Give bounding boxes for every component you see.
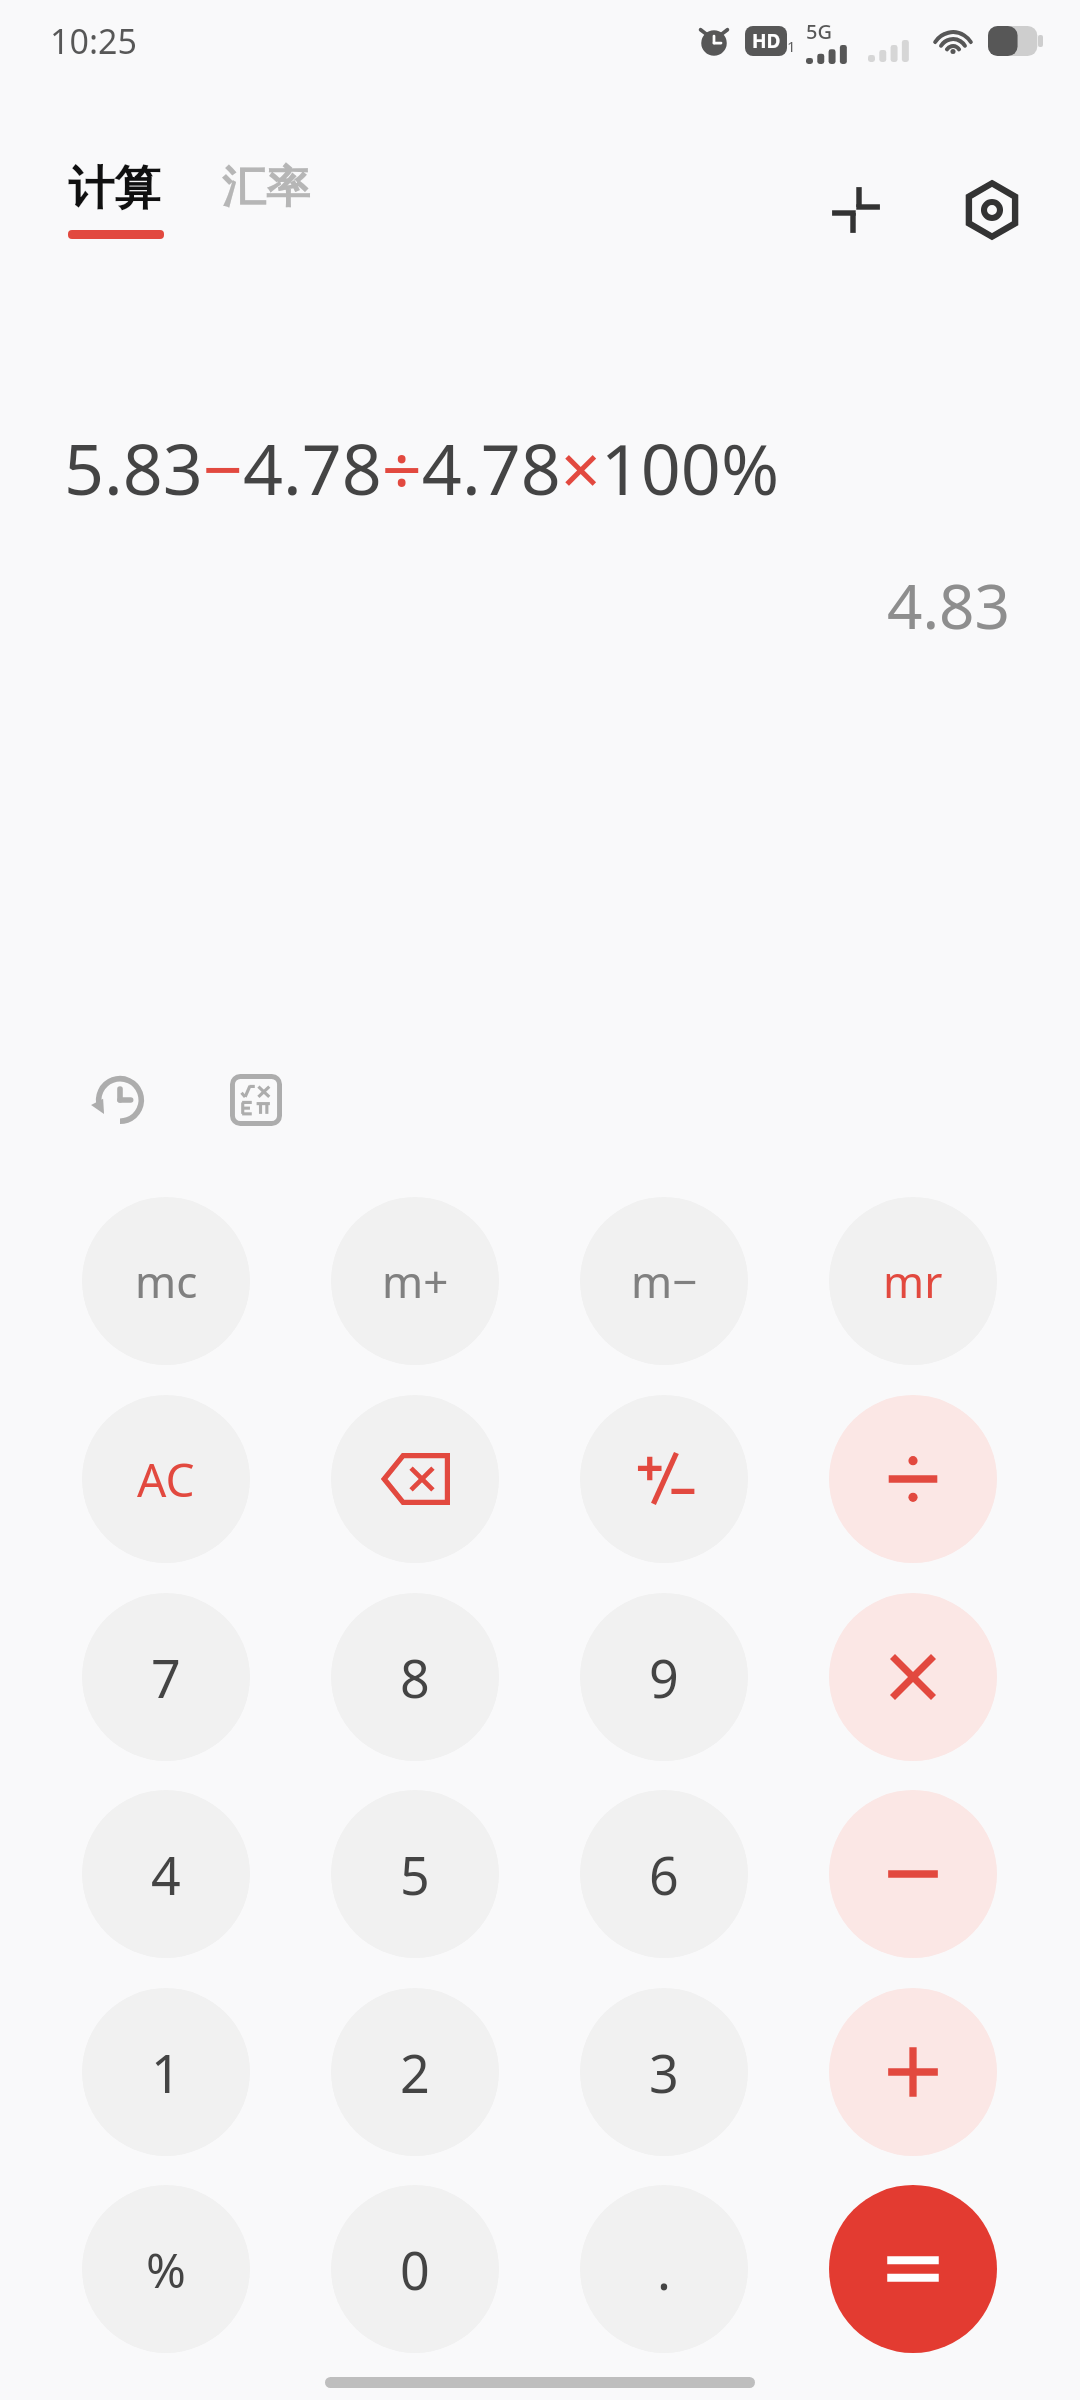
button[interactable]: 5 <box>331 1790 499 1958</box>
staticText: 6 <box>649 1839 679 1910</box>
staticText: 3 <box>649 2037 679 2108</box>
button[interactable]: 9 <box>580 1593 748 1761</box>
staticText: mc <box>135 1251 198 1311</box>
button[interactable]: 汇率 <box>222 160 310 215</box>
button[interactable]: 0 <box>331 2185 499 2353</box>
button[interactable]: Collapse <box>814 168 898 252</box>
button[interactable]: Minus <box>829 1790 997 1958</box>
button[interactable]: Equals <box>829 2185 997 2353</box>
button[interactable]: AC <box>82 1395 250 1563</box>
button[interactable]: 计算 <box>68 160 164 239</box>
button[interactable]: mr <box>829 1197 997 1365</box>
button[interactable]: Plus minus <box>580 1395 748 1563</box>
staticText: 1 <box>151 2037 181 2108</box>
staticText: 5G <box>806 18 832 45</box>
staticText: mr <box>883 1251 943 1311</box>
button[interactable]: Backspace <box>331 1395 499 1563</box>
button[interactable]: 4 <box>82 1790 250 1958</box>
staticText: 4.83 <box>0 563 1010 647</box>
button[interactable]: 3 <box>580 1988 748 2156</box>
staticText: m+ <box>382 1251 449 1311</box>
button[interactable]: 1 <box>82 1988 250 2156</box>
staticText: 5 <box>400 1839 430 1910</box>
staticText: 5.83−4.78÷4.78×100% <box>64 420 1020 515</box>
staticText: % <box>146 2237 186 2302</box>
staticText: 10:25 <box>50 18 137 64</box>
staticText: 1 <box>787 36 796 56</box>
button[interactable]: 2 <box>331 1988 499 2156</box>
button[interactable]: Plus <box>829 1988 997 2156</box>
button[interactable]: mc <box>82 1197 250 1365</box>
staticText: AC <box>137 1448 195 1511</box>
staticText: . <box>657 2234 671 2305</box>
button[interactable]: 6 <box>580 1790 748 1958</box>
staticText: 8 <box>400 1642 430 1713</box>
button[interactable]: 7 <box>82 1593 250 1761</box>
staticText: 7 <box>151 1642 181 1713</box>
staticText: HD <box>752 28 781 54</box>
staticText: 9 <box>649 1642 679 1713</box>
staticText: 0 <box>400 2234 430 2305</box>
button[interactable]: % <box>82 2185 250 2353</box>
button[interactable]: Scientific mode <box>214 1058 298 1142</box>
staticText: 计算 <box>68 160 160 218</box>
button[interactable]: 8 <box>331 1593 499 1761</box>
button[interactable]: History <box>78 1058 162 1142</box>
button[interactable]: m+ <box>331 1197 499 1365</box>
button[interactable]: m− <box>580 1197 748 1365</box>
staticText: 2 <box>400 2037 430 2108</box>
button[interactable]: Settings <box>950 168 1034 252</box>
button[interactable]: Multiply <box>829 1593 997 1761</box>
button[interactable]: . <box>580 2185 748 2353</box>
staticText: 汇率 <box>222 160 310 215</box>
staticText: 4 <box>151 1839 181 1910</box>
staticText: m− <box>631 1251 698 1311</box>
button[interactable]: Divide <box>829 1395 997 1563</box>
